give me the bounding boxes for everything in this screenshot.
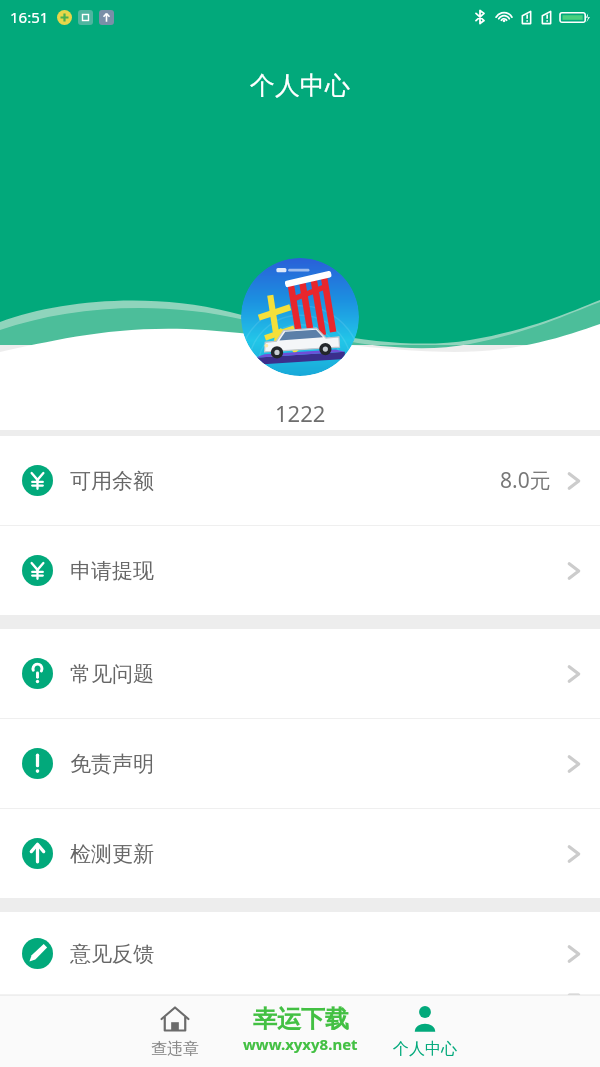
button[interactable]: 免责声明 <box>0 719 600 808</box>
other: SIM signal <box>540 9 553 26</box>
other: SIM signal <box>520 9 533 26</box>
button[interactable]: 检测更新 <box>0 809 600 898</box>
staticText: 申请提现 <box>70 558 154 584</box>
button[interactable]: 可用余额 <box>0 436 600 525</box>
staticText: 常见问题 <box>70 661 154 687</box>
button[interactable]: 查违章 <box>100 995 250 1067</box>
other: 个人中心 <box>409 1003 441 1035</box>
other: Bluetooth <box>473 8 487 26</box>
staticText: 查违章 <box>151 1039 199 1059</box>
other: Battery charging <box>560 10 590 25</box>
staticText: 1222 <box>275 398 326 428</box>
button[interactable]: 常见问题 <box>0 629 600 718</box>
staticText: 意见反馈 <box>70 941 154 967</box>
other: 查违章 <box>159 1003 191 1035</box>
staticText: 个人中心 <box>250 70 350 101</box>
staticText: 8.0元 <box>500 466 551 495</box>
button[interactable]: 申请提现 <box>0 526 600 615</box>
staticText: 可用余额 <box>70 468 154 494</box>
button[interactable]: 意见反馈 <box>0 912 600 995</box>
other: Wi-Fi <box>495 9 513 25</box>
staticText: 检测更新 <box>70 841 154 867</box>
staticText: 个人中心 <box>393 1039 457 1059</box>
staticText: www.xyxy8.net <box>243 1034 358 1054</box>
button[interactable]: 个人中心 <box>350 995 500 1067</box>
button[interactable]: Profile avatar <box>241 258 359 376</box>
staticText: 16:51 <box>10 7 49 27</box>
staticText: 幸运下载 <box>253 1004 349 1034</box>
staticText: 免责声明 <box>70 751 154 777</box>
